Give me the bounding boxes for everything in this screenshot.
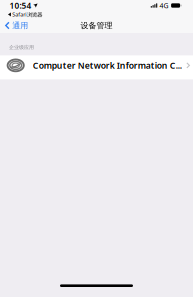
button[interactable]: Safari 浏览器 [0, 11, 193, 18]
button[interactable]: 通用 [0, 18, 34, 33]
staticText: 通用 [12, 20, 28, 31]
staticText: Safari 浏览器 [12, 11, 42, 18]
button[interactable]: Computer Network Information C... [0, 55, 193, 79]
staticText: 10:54 [9, 0, 31, 11]
staticText: 4G [159, 1, 168, 10]
staticText: 企业级应用 [9, 44, 34, 50]
staticText: Computer Network Information C... [33, 59, 182, 71]
staticText: 设备管理 [80, 20, 112, 31]
